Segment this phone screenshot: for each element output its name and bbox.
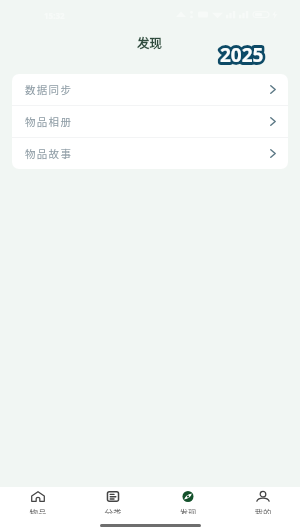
button[interactable]: 数据同步 — [12, 74, 288, 105]
staticText: 分类 — [104, 506, 122, 514]
staticText: 物品 — [29, 506, 47, 514]
button[interactable]: 发现 — [150, 487, 225, 514]
staticText: 发现 — [137, 33, 163, 51]
staticText: 物品故事 — [25, 146, 73, 161]
button[interactable]: 分类 — [75, 487, 150, 514]
staticText: 物品相册 — [25, 114, 73, 129]
button[interactable]: 物品 — [0, 487, 75, 514]
staticText: 发现 — [179, 506, 197, 514]
button[interactable]: 物品相册 — [12, 106, 288, 137]
staticText: 我的 — [254, 506, 272, 514]
staticText: 数据同步 — [25, 82, 73, 97]
button[interactable]: 物品故事 — [12, 138, 288, 169]
button[interactable]: 我的 — [225, 487, 300, 514]
staticText: 2025 — [220, 42, 264, 68]
staticText: 2025 — [220, 42, 264, 68]
